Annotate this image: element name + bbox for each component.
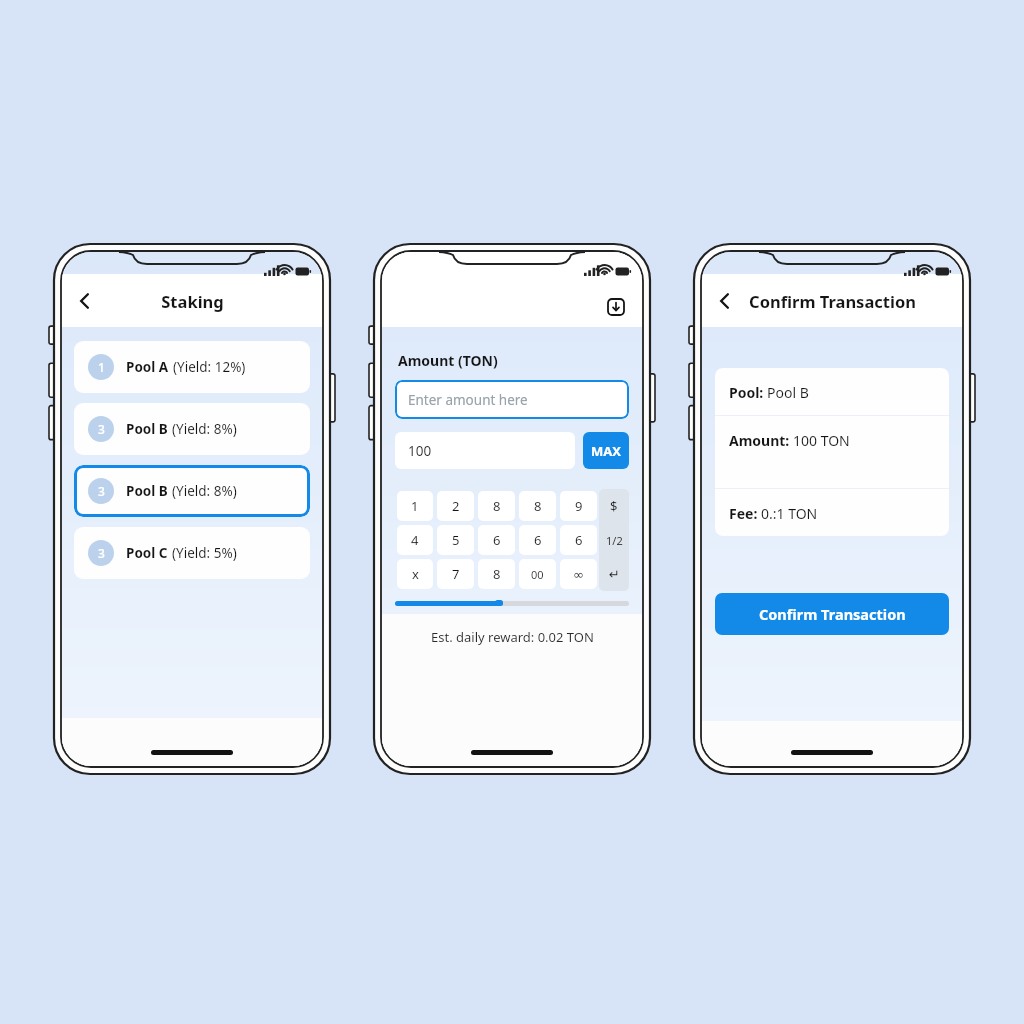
button[interactable]: $ (599, 489, 629, 523)
staticText: 1 (411, 497, 419, 515)
staticText: 6 (534, 531, 542, 549)
button[interactable]: ∞ (560, 559, 597, 589)
staticText: 7 (452, 565, 460, 583)
staticText: 3 (98, 483, 105, 499)
staticText: 0.:1 TON (761, 504, 818, 523)
staticText: 8 (534, 497, 542, 515)
button[interactable]: Back (72, 288, 98, 314)
staticText: 100 TON (793, 431, 850, 450)
staticText: Staking (161, 290, 224, 312)
staticText: 00 (531, 567, 544, 582)
staticText: Est. daily reward: 0.02 TON (431, 628, 594, 646)
staticText: Pool B (126, 482, 168, 500)
staticText: Fee: (729, 504, 761, 523)
button[interactable]: 1/2 (599, 523, 629, 557)
button[interactable]: 1 (74, 341, 310, 393)
button[interactable]: ↵ (599, 557, 629, 591)
staticText: 8 (493, 497, 501, 515)
staticText: 1 (98, 359, 105, 375)
staticText: 6 (493, 531, 501, 549)
staticText: Amount: (729, 431, 793, 450)
staticText: 3 (98, 421, 105, 437)
button[interactable]: Back (712, 288, 738, 314)
button[interactable]: x (397, 559, 433, 589)
staticText: ↵ (609, 567, 620, 582)
button[interactable]: 5 (437, 525, 474, 555)
staticText: x (412, 565, 419, 583)
button[interactable]: 3 (74, 465, 310, 517)
button[interactable]: 6 (560, 525, 597, 555)
staticText: 1/2 (606, 533, 623, 548)
staticText: 9 (575, 497, 583, 515)
button[interactable]: 6 (519, 525, 556, 555)
staticText: Confirm Transaction (749, 290, 916, 312)
button[interactable]: 8 (478, 491, 515, 521)
staticText: 6 (575, 531, 583, 549)
staticText: Enter amount here (408, 391, 528, 409)
staticText: $ (610, 497, 618, 515)
button[interactable]: 8 (478, 559, 515, 589)
button[interactable]: 1 (397, 491, 433, 521)
staticText: 5 (452, 531, 460, 549)
staticText: 100 (408, 442, 432, 460)
button[interactable]: Pool: (715, 368, 949, 415)
staticText: Amount (TON) (398, 351, 498, 370)
button[interactable]: 3 (74, 403, 310, 455)
staticText: 8 (493, 565, 501, 583)
button[interactable]: Fee: (715, 489, 949, 536)
button[interactable]: 100 (395, 432, 575, 469)
staticText: Pool B (126, 420, 168, 438)
staticText: Pool C (126, 544, 168, 562)
staticText: (Yield: 12%) (173, 358, 246, 376)
staticText: ∞ (573, 567, 584, 582)
staticText: 4 (411, 531, 419, 549)
button[interactable]: 7 (437, 559, 474, 589)
staticText: MAX (591, 442, 621, 460)
staticText: Pool A (126, 358, 169, 376)
staticText: Pool: (729, 383, 767, 402)
staticText: Pool B (767, 383, 809, 402)
button[interactable]: 8 (519, 491, 556, 521)
button[interactable]: Enter amount here (395, 380, 629, 419)
button[interactable]: 9 (560, 491, 597, 521)
button[interactable]: 4 (397, 525, 433, 555)
button[interactable]: Download (604, 295, 628, 319)
staticText: 3 (98, 545, 105, 561)
button[interactable]: MAX (583, 432, 629, 469)
staticText: (Yield: 8%) (172, 420, 237, 438)
button[interactable]: 00 (519, 559, 556, 589)
button[interactable]: 3 (74, 527, 310, 579)
button[interactable]: Confirm Transaction (715, 593, 949, 635)
staticText: 2 (452, 497, 460, 515)
button[interactable]: 6 (478, 525, 515, 555)
button[interactable]: 2 (437, 491, 474, 521)
staticText: (Yield: 8%) (172, 482, 237, 500)
button[interactable]: Amount: (715, 416, 949, 488)
staticText: Confirm Transaction (759, 604, 906, 624)
staticText: (Yield: 5%) (172, 544, 237, 562)
